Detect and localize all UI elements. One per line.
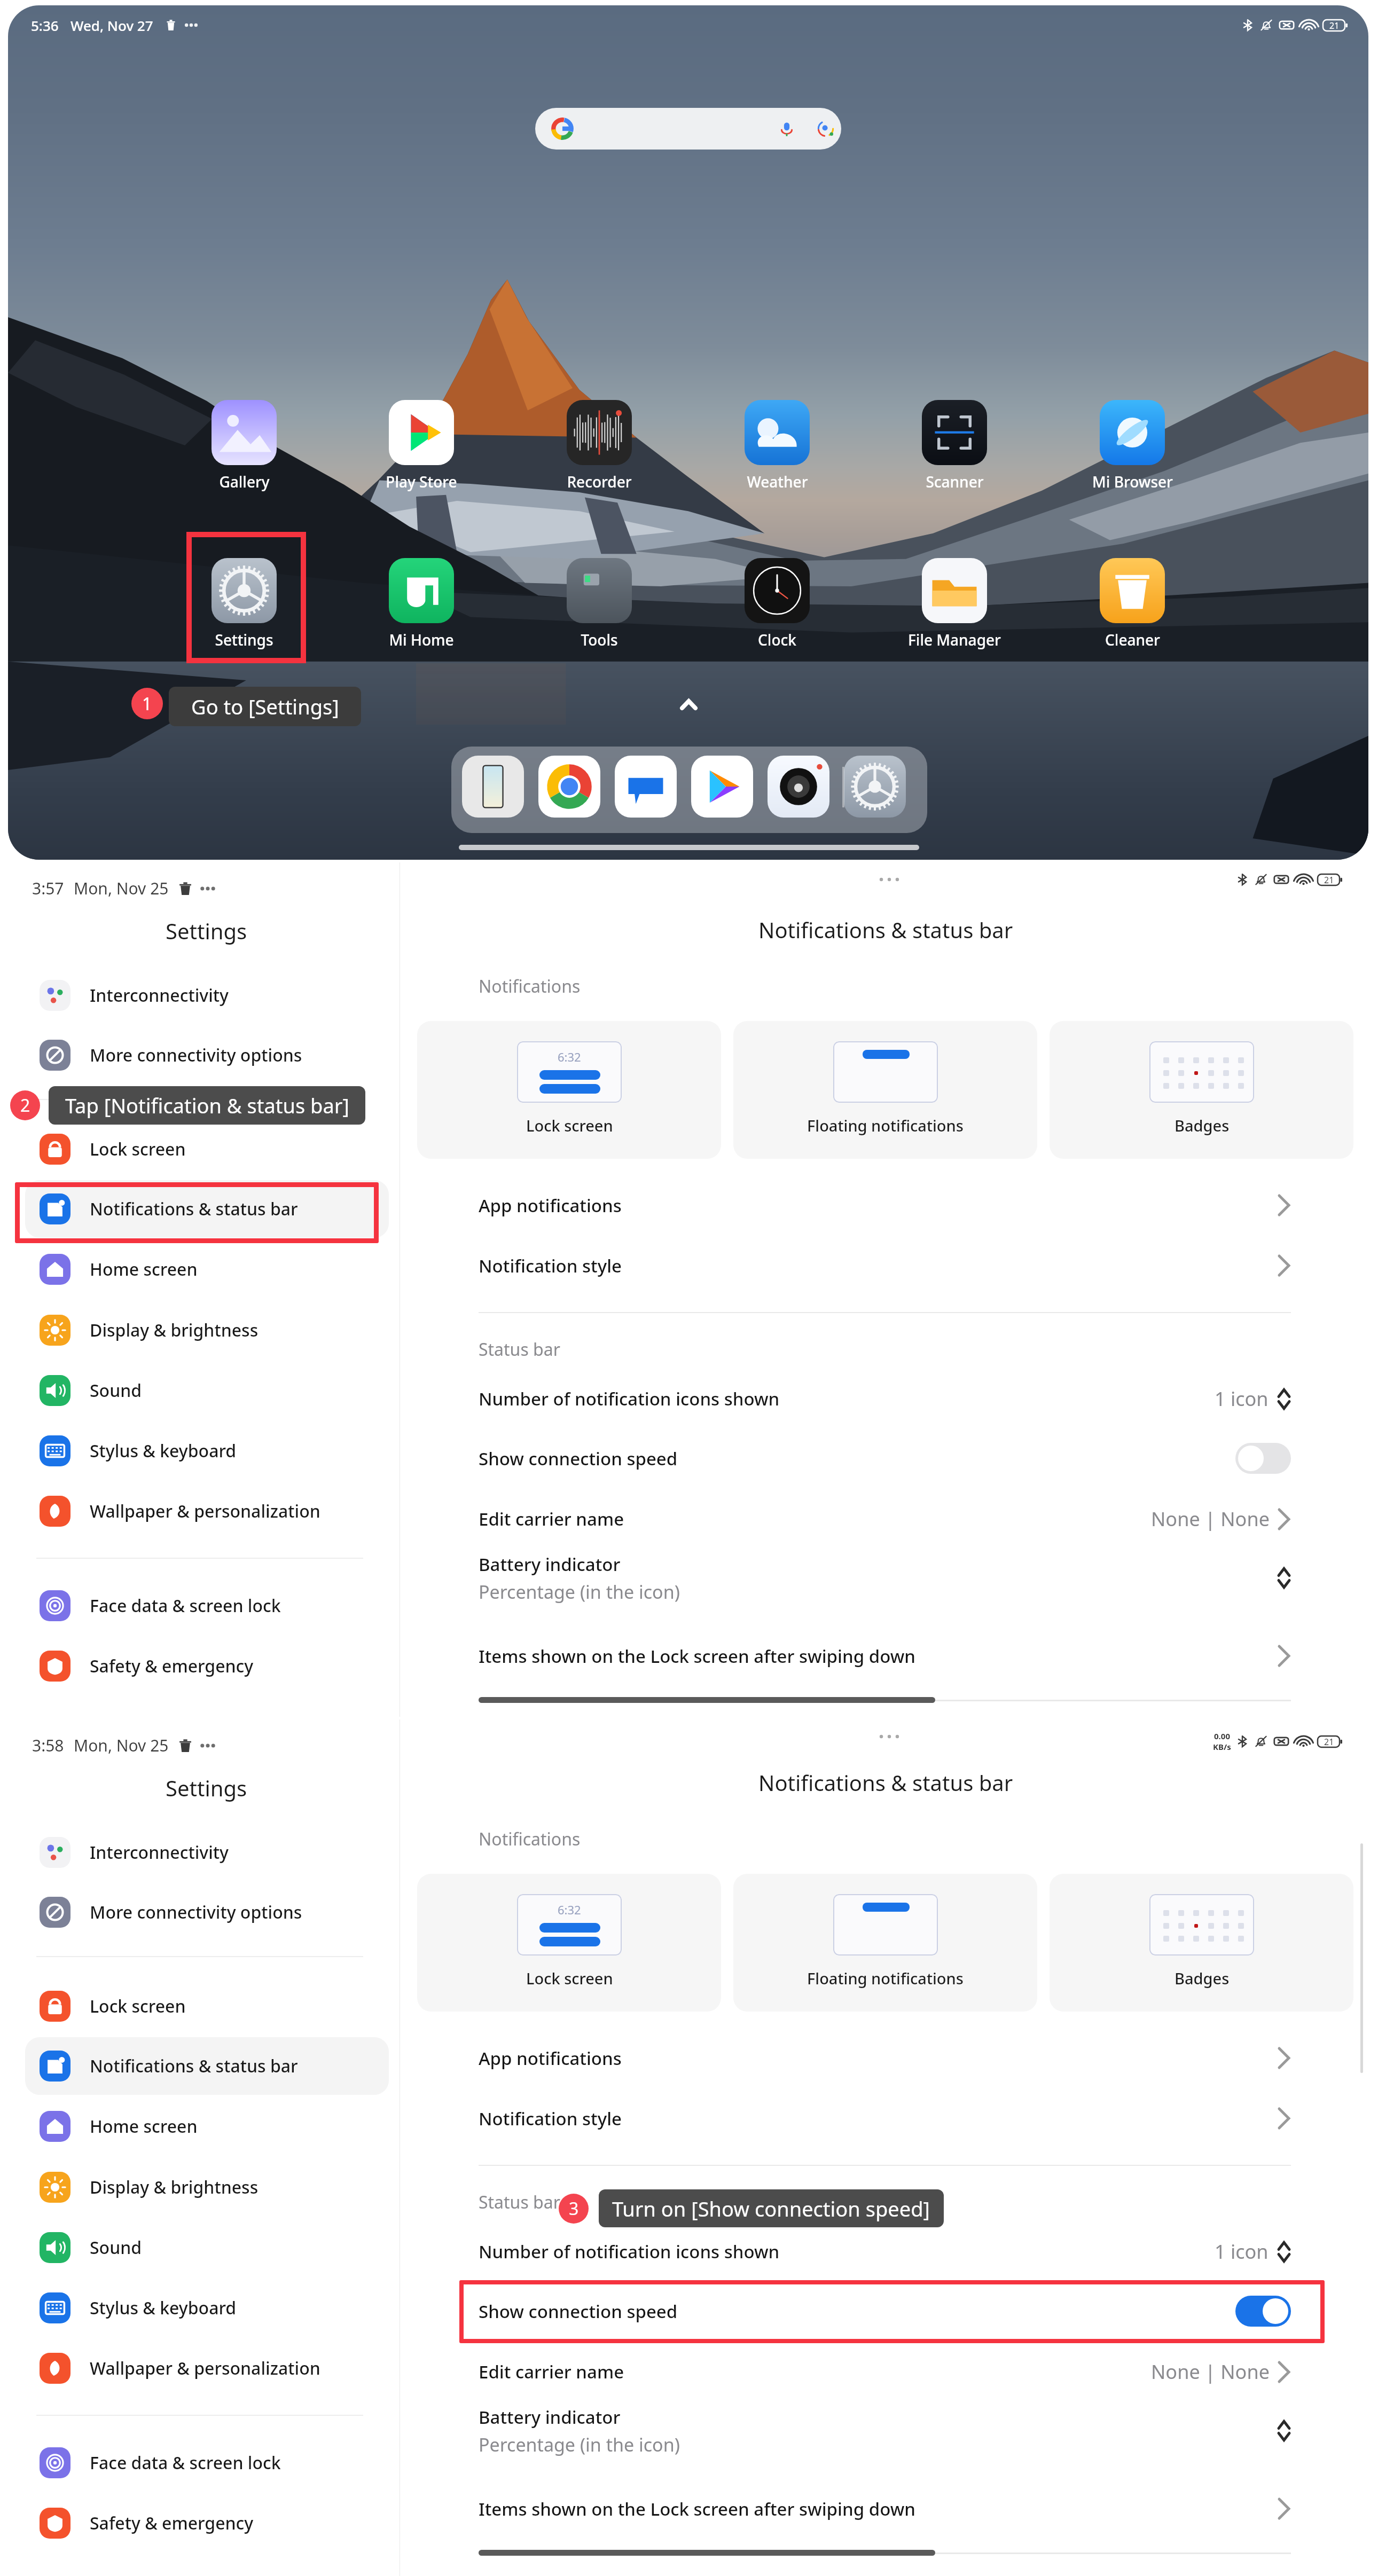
staticText: More connectivity options [90,1043,302,1067]
staticText: Sound [90,1379,142,1402]
button[interactable]: Tools [541,558,658,659]
staticText: Lock screen [90,1137,186,1161]
button[interactable]: Floating notifications [733,1021,1037,1159]
button[interactable]: Show connection speed toggle [1235,1443,1291,1474]
button[interactable]: Battery indicator [479,2401,1291,2461]
button[interactable] [844,756,906,818]
other: Open [1277,1193,1291,1217]
button[interactable]: App notifications [479,1175,1291,1235]
staticText: 6:32 [558,1902,581,1918]
button[interactable]: Settings [185,558,303,659]
staticText: 1 icon [1215,1386,1269,1412]
staticText: None | None [1151,1506,1270,1532]
button[interactable]: Lock screen [25,1120,389,1178]
button[interactable] [462,756,524,818]
staticText: Mi Home [389,630,454,650]
staticText: Display & brightness [90,2176,259,2199]
staticText: Settings [166,1773,247,1802]
button[interactable]: Sound [25,2219,389,2276]
button[interactable]: Floating notifications [733,1874,1037,2012]
button[interactable]: Display & brightness [25,1301,389,1359]
staticText: Percentage (in the icon) [479,1580,680,1604]
button[interactable]: Lock screen [25,1977,389,2035]
button[interactable]: Badges [1050,1021,1353,1159]
staticText: Mon, Nov 25 [74,877,169,899]
staticText: Turn on [Show connection speed] [612,2195,930,2222]
button[interactable]: Face data & screen lock [25,1577,389,1635]
button[interactable]: Weather [718,400,836,501]
staticText: Interconnectivity [90,984,229,1007]
button[interactable]: Notification style [479,1236,1291,1295]
staticText: 3:57 [32,877,64,899]
button[interactable]: Stylus & keyboard [25,1422,389,1480]
button[interactable]: 6:32 [417,1021,721,1159]
button[interactable]: Notification style [479,2088,1291,2148]
button[interactable] [535,108,841,150]
button[interactable]: Face data & screen lock [25,2434,389,2492]
button[interactable]: Sound [25,1362,389,1419]
staticText: 5:36 [31,16,59,35]
button[interactable]: Edit carrier name [479,2342,1291,2401]
button[interactable]: Show connection speed toggle [1235,2296,1291,2327]
staticText: Status bar [479,2190,560,2214]
button[interactable]: Items shown on the Lock screen after swi… [479,1626,1291,1686]
button[interactable]: Wallpaper & personalization [25,1482,389,1540]
staticText: Recorder [567,472,632,492]
button[interactable]: Battery indicator [479,1548,1291,1608]
button[interactable]: Clock [718,558,836,659]
staticText: 2 [20,1094,30,1117]
button[interactable] [615,756,677,818]
button[interactable]: Mi Browser [1074,400,1191,501]
button[interactable] [691,756,753,818]
other: Open [1277,2360,1291,2384]
other: Open [1277,1507,1291,1531]
button[interactable] [538,756,600,818]
staticText: 3:58 [32,1734,64,1756]
staticText: Notifications & status bar [758,915,1013,944]
staticText: Scanner [926,472,984,492]
staticText: Home screen [90,2115,198,2138]
button[interactable]: Interconnectivity [25,967,389,1024]
button[interactable]: Gallery [185,400,303,501]
button[interactable]: Notifications & status bar [25,1180,389,1238]
button[interactable]: Scanner [896,400,1013,501]
button[interactable]: Interconnectivity [25,1824,389,1881]
button[interactable]: Show connection speed [479,1428,1291,1488]
button[interactable] [768,756,829,818]
button[interactable]: 6:32 [417,1874,721,2012]
staticText: Battery indicator [479,1552,621,1576]
button[interactable]: App notifications [479,2028,1291,2088]
other: Open [1277,2107,1291,2130]
staticText: Mi Browser [1092,472,1173,492]
button[interactable]: Home screen [25,1240,389,1298]
staticText: Safety & emergency [90,2511,254,2535]
button[interactable]: Badges [1050,1874,1353,2012]
button[interactable]: Safety & emergency [25,2494,389,2552]
button[interactable]: Display & brightness [25,2158,389,2216]
button[interactable]: Wallpaper & personalization [25,2339,389,2397]
button[interactable]: Mi Home [363,558,480,659]
button[interactable]: Home screen [25,2098,389,2155]
staticText: More connectivity options [90,1900,302,1924]
button[interactable]: Recorder [541,400,658,501]
button[interactable]: Stylus & keyboard [25,2279,389,2337]
button[interactable]: Notifications & status bar [25,2037,389,2095]
staticText: Sound [90,2236,142,2259]
button[interactable]: More connectivity options [25,1026,389,1084]
button[interactable]: Show connection speed [479,2281,1291,2341]
staticText: Notifications [479,975,581,998]
button[interactable]: File Manager [896,558,1013,659]
other: Open app drawer [680,699,698,710]
button[interactable]: Cleaner [1074,558,1191,659]
button[interactable]: Number of notification icons shown [479,2221,1291,2281]
staticText: Notifications & status bar [90,1197,298,1221]
staticText: Notification style [479,2107,622,2131]
button[interactable]: Items shown on the Lock screen after swi… [479,2479,1291,2539]
button[interactable]: More connectivity options [25,1883,389,1941]
button[interactable]: Play Store [363,400,480,501]
staticText: Settings [166,916,247,945]
button[interactable]: Number of notification icons shown [479,1369,1291,1428]
button[interactable]: Safety & emergency [25,1637,389,1695]
button[interactable]: Edit carrier name [479,1489,1291,1549]
staticText: 21 [1324,874,1334,885]
